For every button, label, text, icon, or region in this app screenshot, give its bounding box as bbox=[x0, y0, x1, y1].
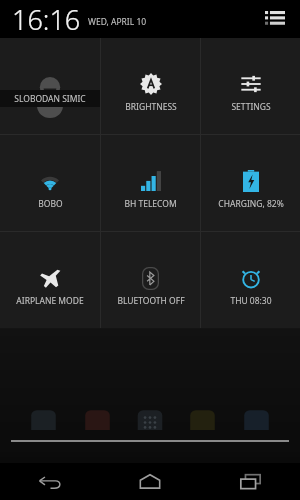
button[interactable]: Wi-Fi BOBO bbox=[0, 135, 100, 231]
button[interactable]: Back bbox=[0, 463, 100, 500]
button[interactable]: Recent apps bbox=[200, 463, 300, 500]
button[interactable]: Airplane mode bbox=[0, 232, 100, 328]
staticText: THU 08:30 bbox=[230, 295, 272, 307]
button[interactable]: Notifications list bbox=[260, 4, 290, 34]
button[interactable]: Brightness bbox=[101, 38, 200, 134]
button[interactable]: Battery bbox=[201, 135, 300, 231]
staticText: CHARGING, 82% bbox=[218, 198, 284, 210]
button[interactable]: User Slobodan Simic bbox=[0, 73, 100, 107]
button[interactable]: Settings bbox=[201, 38, 300, 134]
staticText: AIRPLANE MODE bbox=[16, 295, 84, 307]
button[interactable]: User Slobodan Simic bbox=[0, 38, 100, 134]
button[interactable]: Alarm bbox=[201, 232, 300, 328]
button[interactable]: Mobile network bbox=[101, 135, 200, 231]
button[interactable]: Collapse quick settings bbox=[0, 430, 300, 452]
staticText: SETTINGS bbox=[231, 101, 271, 113]
staticText: BRIGHTNESS bbox=[125, 101, 177, 113]
button[interactable]: Home bbox=[100, 463, 200, 500]
staticText: 16:16 bbox=[12, 1, 81, 38]
button[interactable]: Bluetooth off bbox=[101, 232, 200, 328]
staticText: SLOBODAN SIMIC bbox=[14, 93, 86, 105]
staticText: BLUETOOTH OFF bbox=[117, 295, 185, 307]
staticText: WED, APRIL 10 bbox=[88, 16, 147, 28]
staticText: BOBO bbox=[38, 198, 63, 210]
staticText: BH TELECOM bbox=[124, 198, 177, 210]
